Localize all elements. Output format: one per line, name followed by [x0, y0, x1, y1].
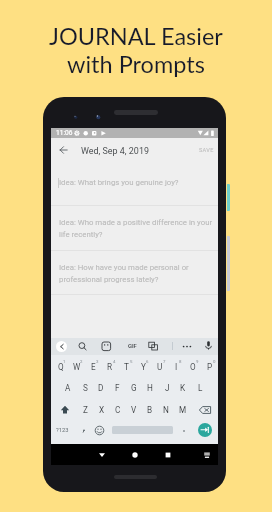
staticText: 11:06 [56, 129, 73, 137]
staticText: D [98, 383, 104, 393]
staticText: Y [141, 362, 146, 372]
button[interactable]: More options [181, 341, 193, 352]
button[interactable]: Shift [58, 403, 72, 417]
button[interactable]: Hide toolbar [56, 341, 67, 352]
staticText: R [107, 362, 113, 372]
staticText: Z [83, 405, 88, 415]
button[interactable]: Voice input [203, 340, 214, 352]
button[interactable]: Back [54, 141, 72, 159]
button[interactable]: S [77, 379, 93, 397]
staticText: L [198, 383, 203, 393]
staticText: 0 [213, 359, 216, 364]
button[interactable]: Home [129, 449, 141, 461]
button[interactable]: Hide keyboard [201, 449, 213, 461]
button[interactable]: Emoji [94, 425, 105, 436]
button[interactable]: L [192, 379, 208, 397]
button[interactable]: Z [77, 401, 93, 419]
staticText: N [163, 405, 169, 415]
staticText: SAVE [199, 147, 214, 154]
button[interactable]: C [110, 401, 126, 419]
button[interactable]: N [158, 401, 174, 419]
staticText: 1 [63, 359, 66, 364]
staticText: F [115, 383, 120, 393]
staticText: K [180, 383, 186, 393]
button[interactable]: Stickers [101, 341, 112, 352]
staticText: Idea: What brings you genuine joy? [59, 178, 179, 187]
staticText: E [91, 362, 96, 372]
staticText: 7 [163, 359, 166, 364]
button[interactable]: P [201, 358, 218, 376]
button[interactable]: Backspace [197, 403, 213, 417]
button[interactable]: Enter [198, 423, 212, 437]
staticText: T [124, 362, 129, 372]
staticText: 8 [179, 359, 182, 364]
button[interactable]: G [126, 379, 142, 397]
staticText: S [83, 383, 88, 393]
button[interactable]: I [168, 358, 185, 376]
staticText: 6 [146, 359, 149, 364]
staticText: H [147, 383, 153, 393]
button[interactable]: Recent apps [162, 449, 174, 461]
button[interactable]: B [142, 401, 158, 419]
staticText: U [157, 362, 163, 372]
button[interactable]: H [142, 379, 158, 397]
staticText: G [131, 383, 137, 393]
staticText: 4 [113, 359, 116, 364]
button[interactable]: Search [77, 341, 88, 352]
staticText: W [73, 362, 81, 372]
button[interactable]: Idea: Who made a positive difference in … [51, 205, 218, 250]
button[interactable]: Q [52, 358, 69, 376]
button[interactable]: F [109, 379, 125, 397]
button[interactable]: V [126, 401, 142, 419]
button[interactable]: J [159, 379, 175, 397]
staticText: X [99, 405, 105, 415]
staticText: Q [58, 362, 64, 372]
button[interactable]: A [60, 379, 76, 397]
staticText: O [190, 362, 196, 372]
staticText: 2 [80, 359, 83, 364]
staticText: C [115, 405, 121, 415]
staticText: Wed, Sep 4, 2019 [81, 146, 149, 156]
button[interactable]: E [85, 358, 102, 376]
button[interactable]: U [151, 358, 168, 376]
staticText: JOURNAL Easier [49, 22, 223, 50]
staticText: J [165, 383, 170, 393]
button[interactable]: O [184, 358, 201, 376]
button[interactable]: Idea: How have you made personal or prof… [51, 250, 218, 295]
button[interactable]: Back [96, 449, 108, 461]
button[interactable]: Period [179, 425, 189, 435]
button[interactable]: ?123 [53, 423, 71, 437]
button[interactable]: GIF [123, 339, 141, 353]
button[interactable]: Translate [148, 341, 159, 352]
button[interactable]: Idea: What brings you genuine joy? [51, 165, 218, 205]
button[interactable]: K [175, 379, 191, 397]
button[interactable]: W [68, 358, 85, 376]
staticText: with Prompts [67, 50, 205, 78]
button[interactable]: Comma [79, 425, 89, 435]
button[interactable]: R [101, 358, 118, 376]
staticText: ?123 [56, 427, 69, 434]
staticText: M [179, 405, 187, 415]
staticText: B [147, 405, 153, 415]
staticText: I [175, 362, 178, 372]
button[interactable]: Y [135, 358, 152, 376]
button[interactable]: X [94, 401, 110, 419]
staticText: Idea: How have you made personal or prof… [59, 263, 189, 284]
staticText: P [207, 362, 213, 372]
staticText: 9 [196, 359, 199, 364]
staticText: V [131, 405, 137, 415]
staticText: 5 [130, 359, 133, 364]
button[interactable]: T [118, 358, 135, 376]
button[interactable]: SAVE [197, 144, 215, 156]
button[interactable]: D [93, 379, 109, 397]
staticText: Idea: Who made a positive difference in … [59, 218, 213, 239]
staticText: GIF [128, 343, 137, 350]
staticText: A [65, 383, 71, 393]
button[interactable]: M [175, 401, 191, 419]
staticText: 3 [96, 359, 99, 364]
